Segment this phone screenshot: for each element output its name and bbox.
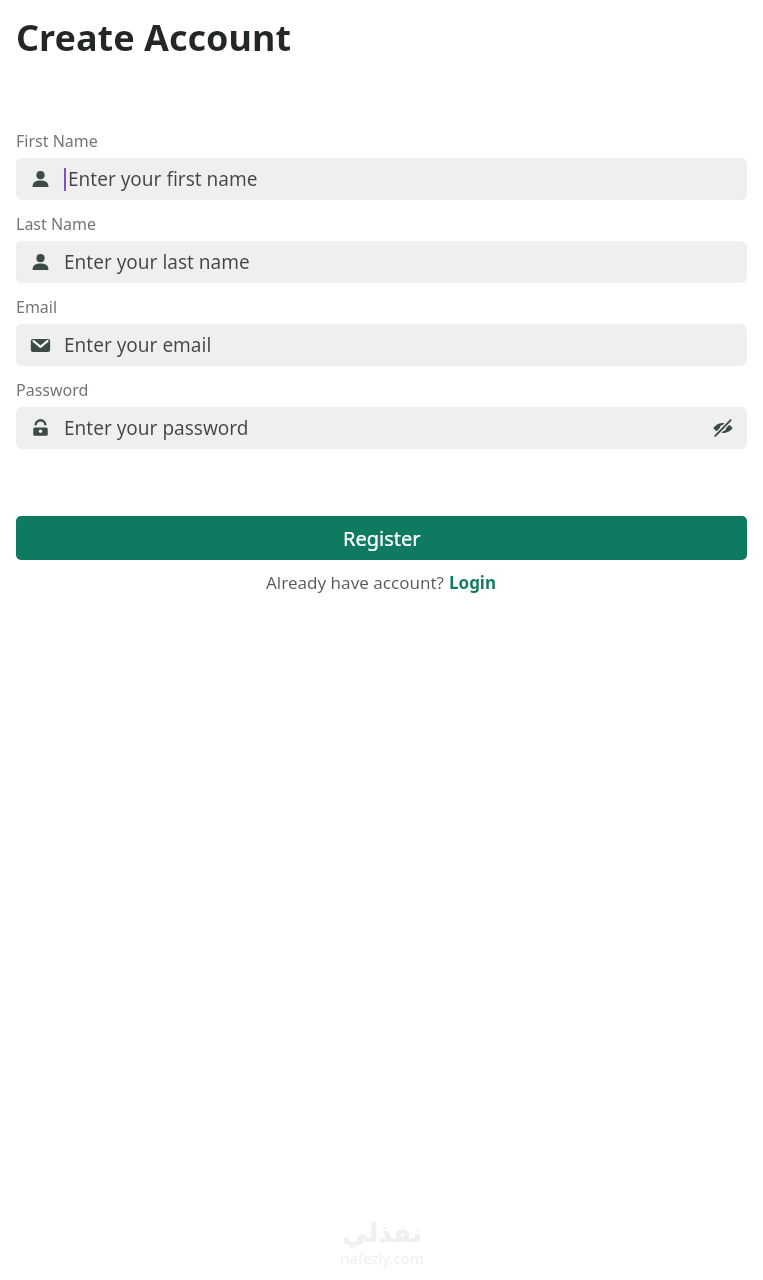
staticText: Last Name — [16, 213, 97, 235]
staticText: Enter your last name — [64, 249, 250, 275]
button[interactable]: Register — [16, 516, 747, 560]
button[interactable]: Enter your last name — [16, 241, 747, 283]
staticText: Login — [449, 571, 497, 594]
staticText: Create Account — [16, 13, 292, 62]
staticText: Password — [16, 379, 89, 401]
button[interactable]: Enter your first name — [16, 158, 747, 200]
staticText: Enter your email — [64, 332, 212, 358]
button[interactable]: Show password — [705, 410, 741, 446]
staticText: First Name — [16, 130, 98, 152]
staticText: Email — [16, 296, 58, 318]
staticText: Enter your first name — [68, 166, 258, 192]
staticText: نفذلي — [342, 1218, 422, 1248]
staticText: Already have account? — [266, 571, 449, 594]
button[interactable]: Enter your email — [16, 324, 747, 366]
staticText: Enter your password — [64, 415, 249, 441]
staticText: Register — [343, 525, 421, 552]
button[interactable]: Login — [449, 571, 497, 594]
button[interactable]: Enter your password — [16, 407, 747, 449]
staticText: nafezly.com — [340, 1248, 424, 1268]
